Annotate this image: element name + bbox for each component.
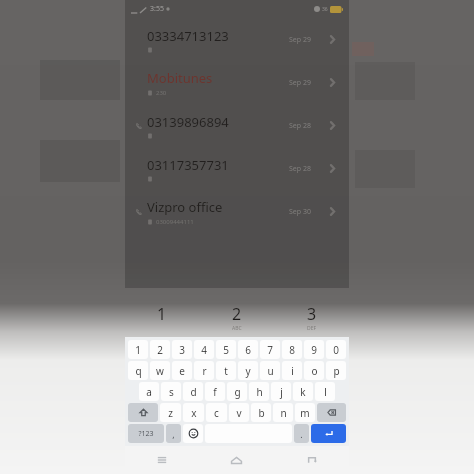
staticText: o xyxy=(311,364,318,378)
button[interactable]: 3 xyxy=(172,340,192,359)
button[interactable]: n xyxy=(273,403,293,422)
staticText: 03009444111 xyxy=(156,218,194,226)
button[interactable]: q xyxy=(128,361,148,380)
button[interactable]: l xyxy=(315,382,335,401)
button[interactable]: 6 xyxy=(238,340,258,359)
button[interactable]: o xyxy=(304,361,324,380)
button[interactable]: , xyxy=(166,424,181,443)
staticText: ?123 xyxy=(138,429,154,439)
button[interactable]: 5 xyxy=(216,340,236,359)
button[interactable]: 03334713123 xyxy=(131,18,343,61)
button[interactable]: u xyxy=(260,361,280,380)
staticText: y xyxy=(245,364,251,378)
button[interactable]: x xyxy=(183,403,204,422)
staticText: 9 xyxy=(311,343,317,357)
button[interactable]: Recents xyxy=(125,446,199,474)
button[interactable]: i xyxy=(282,361,302,380)
staticText: k xyxy=(300,385,306,399)
button[interactable]: b xyxy=(251,403,271,422)
button[interactable]: ?123 xyxy=(128,424,164,443)
button[interactable]: 8 xyxy=(282,340,302,359)
staticText: Sep 29 xyxy=(289,35,311,45)
button[interactable]: 03117357731 xyxy=(131,147,343,190)
staticText: 36 xyxy=(322,6,328,13)
button[interactable]: c xyxy=(206,403,227,422)
staticText: . xyxy=(300,428,303,440)
button[interactable]: Mobitunes xyxy=(131,61,343,104)
button[interactable]: 1 xyxy=(128,340,148,359)
staticText: n xyxy=(280,406,287,420)
button[interactable]: t xyxy=(216,361,236,380)
staticText: 1 xyxy=(135,343,141,357)
staticText: r xyxy=(202,364,207,378)
button[interactable]: 03139896894 xyxy=(131,104,343,147)
button[interactable]: 9 xyxy=(304,340,324,359)
button[interactable]: 7 xyxy=(260,340,280,359)
staticText: t xyxy=(224,364,228,378)
staticText: g xyxy=(234,385,241,399)
button[interactable]: g xyxy=(227,382,247,401)
button[interactable]: z xyxy=(160,403,181,422)
staticText: 3:55 xyxy=(150,4,164,14)
button[interactable]: Details xyxy=(321,104,343,147)
button[interactable]: Shift xyxy=(128,403,158,422)
button[interactable]: 0 xyxy=(326,340,346,359)
button[interactable]: Backspace xyxy=(317,403,346,422)
button[interactable]: r xyxy=(194,361,214,380)
button[interactable]: . xyxy=(294,424,309,443)
button[interactable]: h xyxy=(249,382,269,401)
button[interactable]: f xyxy=(205,382,225,401)
button[interactable]: 1 xyxy=(125,297,199,337)
button[interactable]: k xyxy=(293,382,313,401)
button[interactable]: 2 xyxy=(150,340,170,359)
button[interactable]: v xyxy=(229,403,249,422)
button[interactable]: Details xyxy=(321,18,343,61)
button[interactable]: a xyxy=(139,382,159,401)
button[interactable]: Back xyxy=(274,446,349,474)
button[interactable]: j xyxy=(271,382,291,401)
button[interactable]: d xyxy=(183,382,203,401)
staticText: x xyxy=(191,406,197,420)
staticText: Vizpro office xyxy=(147,198,223,216)
button[interactable]: Vizpro office xyxy=(131,190,343,233)
staticText: 230 xyxy=(156,89,167,97)
staticText: s xyxy=(169,385,174,399)
staticText: f xyxy=(213,385,217,399)
button[interactable]: 4 xyxy=(194,340,214,359)
button[interactable]: Details xyxy=(321,190,343,233)
staticText: 1 xyxy=(157,303,167,325)
staticText: 8 xyxy=(289,343,295,357)
staticText: Sep 29 xyxy=(289,78,311,88)
staticText: c xyxy=(214,406,219,420)
staticText: 03334713123 xyxy=(147,27,229,45)
staticText: DEF xyxy=(307,325,317,332)
button[interactable]: Enter xyxy=(311,424,346,443)
staticText: w xyxy=(156,364,164,378)
staticText: Sep 28 xyxy=(289,164,311,174)
staticText: 0 xyxy=(333,343,339,357)
button[interactable]: Details xyxy=(321,147,343,190)
staticText: 7 xyxy=(267,343,273,357)
staticText: q xyxy=(135,364,142,378)
button[interactable]: Home xyxy=(199,446,274,474)
staticText: 3 xyxy=(179,343,185,357)
staticText: l xyxy=(324,385,327,399)
button[interactable]: Emoji xyxy=(183,424,203,443)
staticText: a xyxy=(146,385,152,399)
staticText: 5 xyxy=(223,343,229,357)
staticText: p xyxy=(333,364,340,378)
button[interactable]: 3 xyxy=(274,297,349,337)
button[interactable]: s xyxy=(161,382,181,401)
staticText: m xyxy=(300,406,310,420)
button[interactable]: 2 xyxy=(199,297,274,337)
staticText: 2 xyxy=(232,303,242,325)
button[interactable]: e xyxy=(172,361,192,380)
button[interactable]: p xyxy=(326,361,346,380)
button[interactable]: Details xyxy=(321,61,343,104)
button[interactable]: y xyxy=(238,361,258,380)
button[interactable]: m xyxy=(295,403,315,422)
button[interactable]: w xyxy=(150,361,170,380)
staticText: Sep 28 xyxy=(289,121,311,131)
staticText: i xyxy=(291,364,294,378)
